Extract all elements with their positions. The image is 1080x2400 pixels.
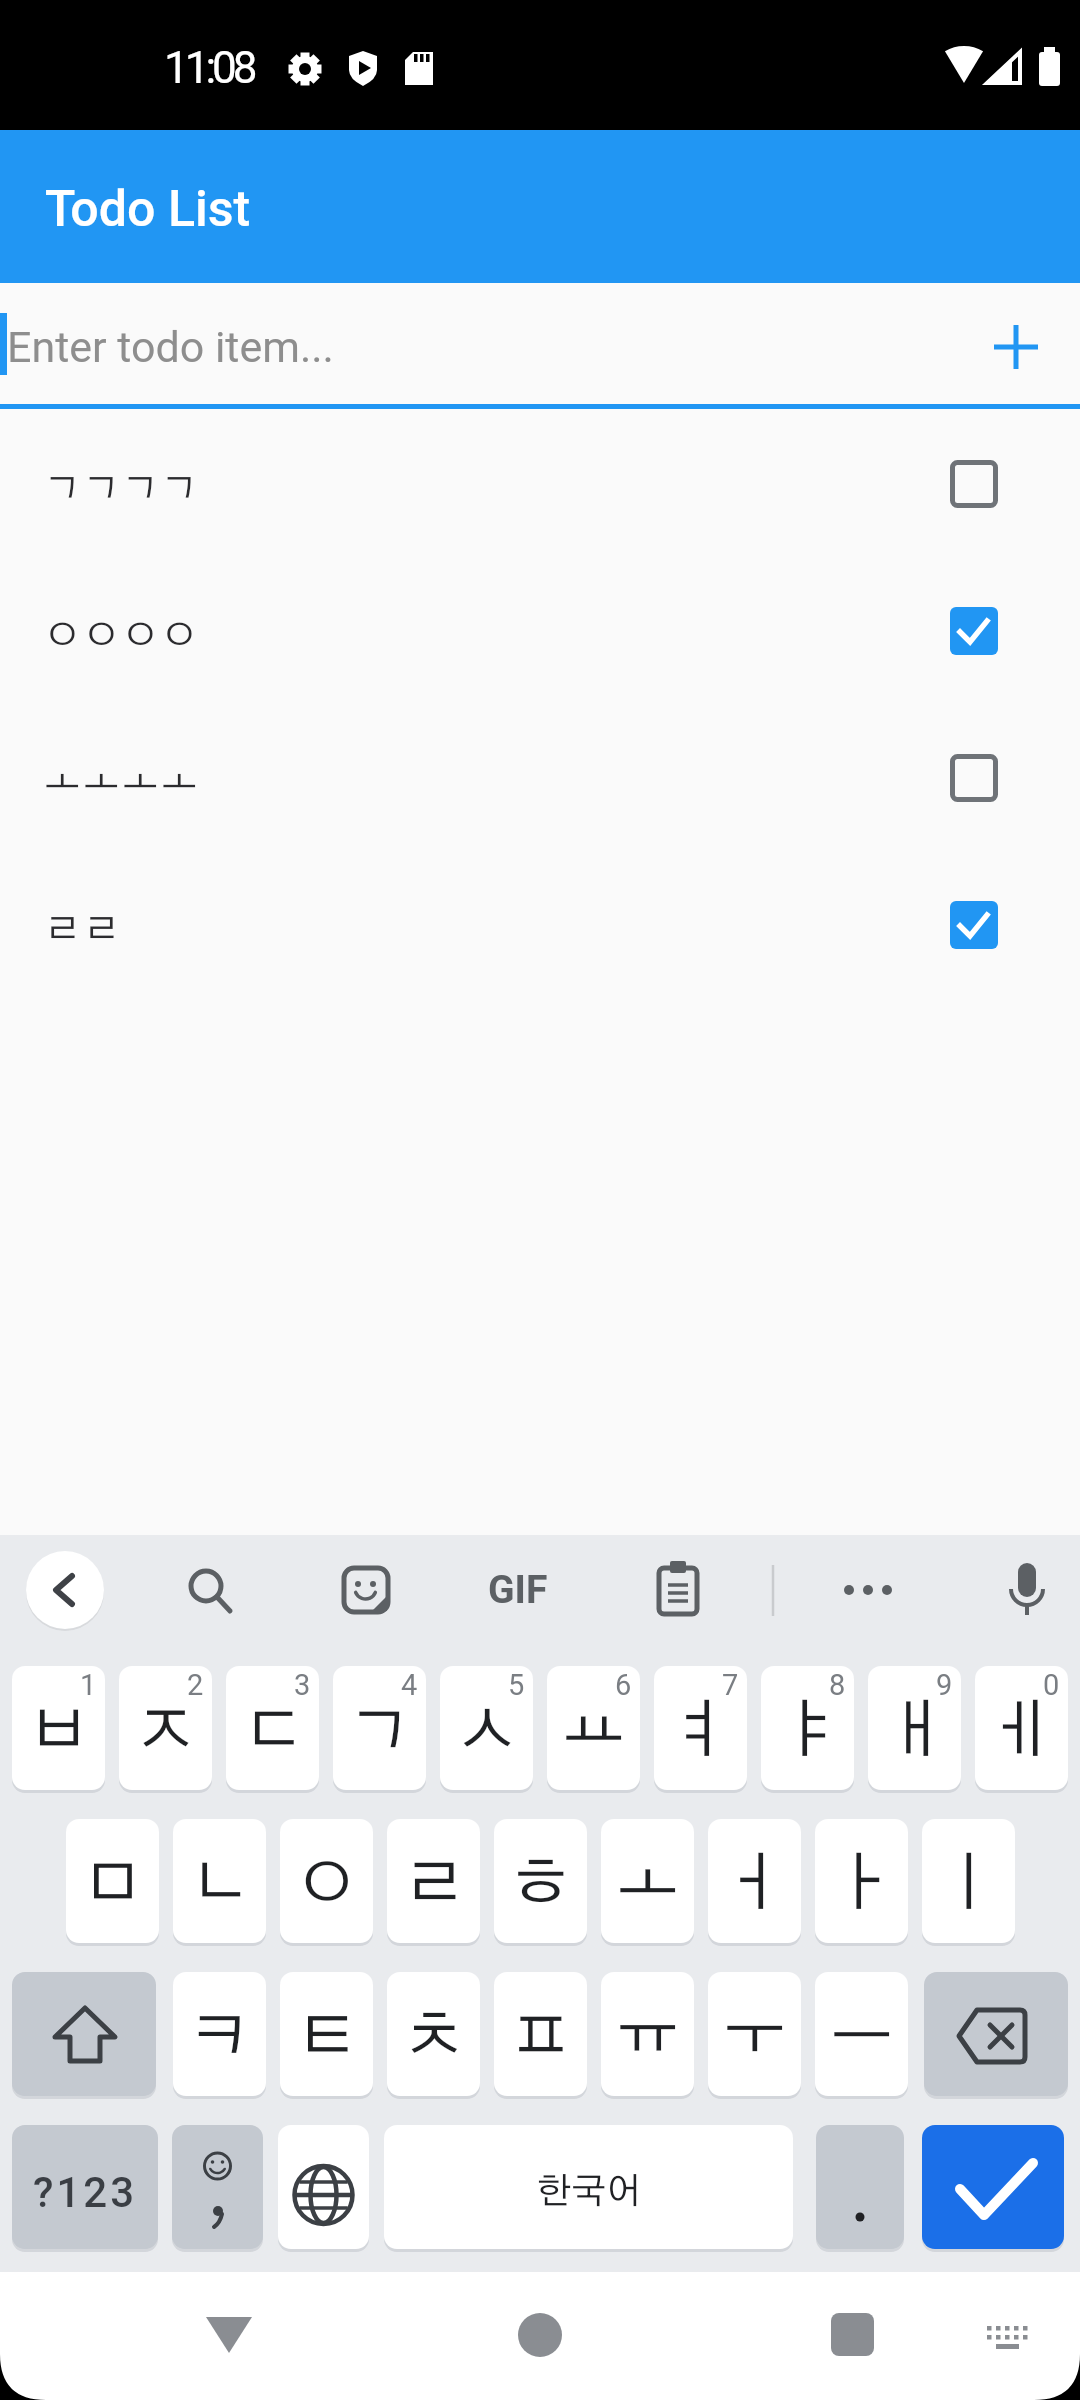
staticText: 한국어	[537, 2174, 641, 2210]
staticText: 9	[936, 1668, 953, 1702]
button[interactable]: ㅠ	[601, 1972, 694, 2096]
staticText: ㄹ	[402, 1853, 466, 1917]
staticText: ?123	[33, 2168, 138, 2217]
staticText: ㅅ	[455, 1700, 519, 1764]
button[interactable]: ㄹ	[387, 1819, 480, 1943]
button[interactable]: ㄱㄱㄱㄱ	[0, 410, 1080, 557]
button[interactable]: ㅓ	[708, 1819, 801, 1943]
staticText: ㅣ	[937, 1853, 1001, 1917]
button[interactable]: ㄴ	[173, 1819, 266, 1943]
button[interactable]	[26, 1551, 104, 1629]
staticText: ㄱㄱㄱㄱ	[43, 470, 199, 507]
staticText: ㅇ	[295, 1853, 359, 1917]
button[interactable]: ㅁ	[66, 1819, 159, 1943]
button[interactable]	[782, 2272, 922, 2400]
staticText: ㅁ	[81, 1853, 145, 1917]
button[interactable]: ㅂ	[12, 1666, 105, 1790]
staticText: ㅗ	[616, 1853, 680, 1917]
staticText: ㅔ	[990, 1700, 1054, 1764]
staticText: ㅐ	[883, 1700, 947, 1764]
staticText: 2	[187, 1668, 204, 1702]
staticText: ㄷ	[241, 1700, 305, 1764]
button[interactable]: ㅗㅗㅗㅗ	[0, 704, 1080, 851]
staticText: ㅑ	[776, 1700, 840, 1764]
button[interactable]: ㅇ	[280, 1819, 373, 1943]
button[interactable]: ㅌ	[280, 1972, 373, 2096]
staticText: 0	[1043, 1668, 1060, 1702]
button[interactable]: ㄱ	[333, 1666, 426, 1790]
staticText: ㅡ	[830, 2006, 894, 2070]
staticText: 8	[829, 1668, 846, 1702]
button[interactable]	[960, 2272, 1060, 2400]
button[interactable]	[970, 301, 1062, 393]
button[interactable]: ㅎ	[494, 1819, 587, 1943]
button[interactable]: Enter todo item...	[0, 283, 1080, 409]
staticText: ㅍ	[509, 2006, 573, 2070]
staticText: Enter todo item...	[7, 322, 334, 372]
staticText: ㅌ	[295, 2006, 359, 2070]
button[interactable]	[924, 1972, 1068, 2096]
button[interactable]: ?123	[12, 2125, 158, 2249]
button[interactable]: ㅐ	[868, 1666, 961, 1790]
staticText: GIF	[488, 1567, 548, 1613]
button[interactable]	[160, 2272, 300, 2400]
staticText: ㅛ	[562, 1700, 626, 1764]
button[interactable]	[470, 2272, 610, 2400]
staticText: 6	[615, 1668, 632, 1702]
staticText: 4	[401, 1668, 418, 1702]
staticText: ㅇㅇㅇㅇ	[43, 617, 199, 654]
staticText: ㅏ	[830, 1853, 894, 1917]
button[interactable]: ㅜ	[708, 1972, 801, 2096]
button[interactable]: ㅋ	[173, 1972, 266, 2096]
staticText: ㅗㅗㅗㅗ	[43, 764, 199, 801]
staticText: 7	[722, 1668, 739, 1702]
button[interactable]	[816, 2125, 904, 2249]
button[interactable]: ㅕ	[654, 1666, 747, 1790]
staticText: ㅂ	[27, 1700, 91, 1764]
button[interactable]: ㅡ	[815, 1972, 908, 2096]
button[interactable]: ㅛ	[547, 1666, 640, 1790]
button[interactable]: ㅈ	[119, 1666, 212, 1790]
staticText: 11:08	[164, 42, 254, 94]
staticText: ㅓ	[723, 1853, 787, 1917]
staticText: ㅈ	[134, 1700, 198, 1764]
staticText: ㅜ	[723, 2006, 787, 2070]
button[interactable]: ㅏ	[815, 1819, 908, 1943]
staticText: 1	[80, 1668, 97, 1702]
button[interactable]	[172, 2125, 263, 2249]
staticText: ㄹㄹ	[43, 911, 121, 948]
staticText: ㄱ	[348, 1700, 412, 1764]
staticText: Todo List	[45, 180, 251, 239]
staticText: 3	[294, 1668, 311, 1702]
button[interactable]	[278, 2125, 369, 2249]
button[interactable]: 한국어	[384, 2125, 793, 2249]
button[interactable]: ㄷ	[226, 1666, 319, 1790]
button[interactable]: ㅍ	[494, 1972, 587, 2096]
button[interactable]: ㄹㄹ	[0, 851, 1080, 998]
staticText: ㅎ	[509, 1853, 573, 1917]
button[interactable]: ㅣ	[922, 1819, 1015, 1943]
button[interactable]: ㅗ	[601, 1819, 694, 1943]
staticText: ㅠ	[616, 2006, 680, 2070]
button[interactable]: ㅇㅇㅇㅇ	[0, 557, 1080, 704]
button[interactable]: ㅑ	[761, 1666, 854, 1790]
button[interactable]: ㅊ	[387, 1972, 480, 2096]
staticText: ㅕ	[669, 1700, 733, 1764]
button[interactable]	[922, 2125, 1064, 2249]
button[interactable]: ㅅ	[440, 1666, 533, 1790]
button[interactable]	[12, 1972, 156, 2096]
staticText: 5	[508, 1668, 525, 1702]
staticText: ㄴ	[188, 1853, 252, 1917]
staticText: ㅋ	[188, 2006, 252, 2070]
button[interactable]: ㅔ	[975, 1666, 1068, 1790]
staticText: ㅊ	[402, 2006, 466, 2070]
